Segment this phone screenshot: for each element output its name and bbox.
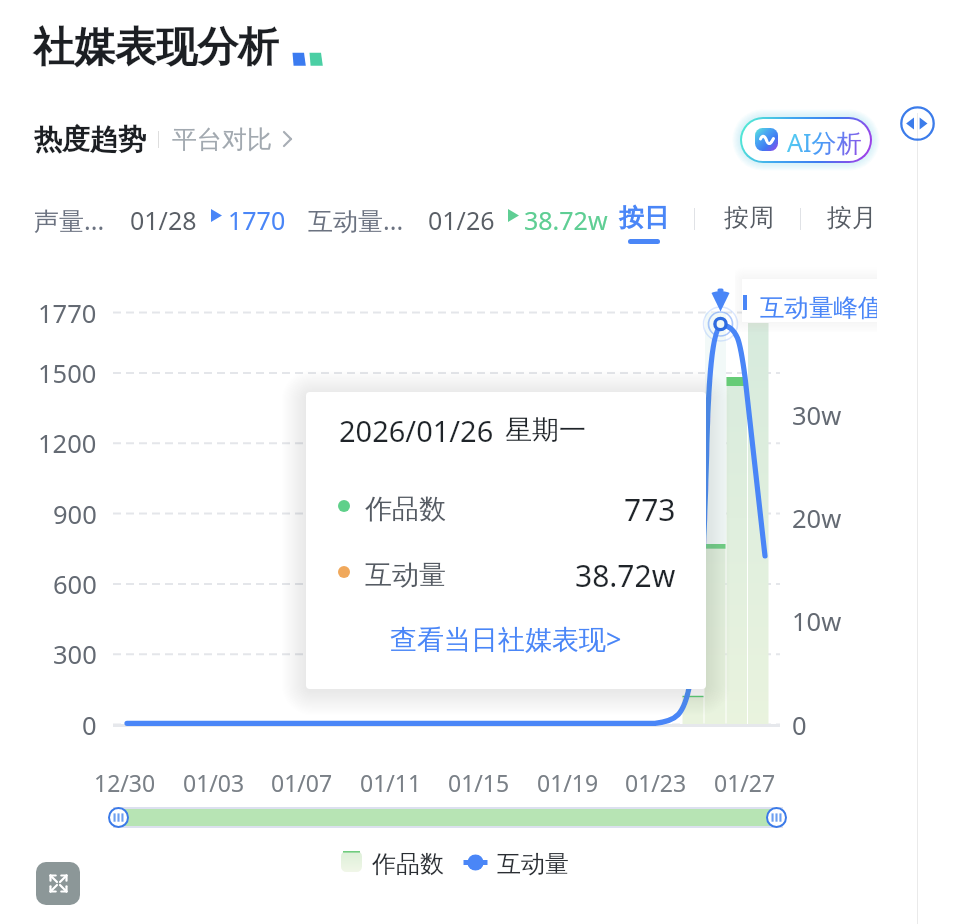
staticText: 互动量 — [497, 849, 569, 879]
button[interactable]: Range handle — [108, 807, 129, 828]
staticText: 平台对比 — [172, 124, 272, 155]
button[interactable]: AI分析 — [742, 119, 870, 161]
staticText: 作品数 — [372, 849, 444, 879]
staticText: 1500 — [38, 356, 97, 390]
staticText: 300 — [53, 637, 97, 671]
staticText: 声量... — [34, 203, 105, 237]
staticText: 热度趋势 — [34, 122, 146, 157]
button[interactable]: Collapse panel — [900, 106, 935, 141]
staticText: 查看当日社媒表现> — [390, 620, 622, 657]
staticText: 900 — [53, 497, 97, 531]
staticText: 0 — [792, 708, 807, 742]
staticText: 01/11 — [360, 767, 422, 798]
staticText: 38.72w — [575, 555, 676, 596]
staticText: 互动量 — [365, 558, 446, 592]
staticText: 1200 — [38, 426, 97, 460]
staticText: 01/15 — [448, 767, 510, 798]
staticText: 01/26 — [428, 203, 495, 237]
button[interactable]: Range handle — [766, 807, 787, 828]
staticText: 20w — [792, 501, 842, 535]
staticText: 30w — [792, 398, 842, 432]
staticText: 1770 — [38, 296, 97, 330]
staticText: 作品数 — [365, 492, 446, 526]
staticText: 星期一 — [505, 413, 586, 447]
staticText: 01/27 — [714, 767, 776, 798]
staticText: 773 — [624, 489, 676, 530]
staticText: 按月 — [827, 202, 877, 233]
staticText: 0 — [82, 708, 97, 742]
staticText: AI分析 — [787, 125, 862, 159]
button[interactable]: 查看当日社媒表现> — [376, 614, 636, 662]
button[interactable]: Fullscreen — [36, 862, 80, 905]
staticText: 互动量... — [308, 203, 404, 237]
staticText: 1770 — [228, 203, 286, 237]
staticText: 2026/01/26 — [339, 411, 494, 450]
button[interactable]: 按周 — [717, 198, 781, 240]
button[interactable]: 按日 — [612, 198, 676, 250]
staticText: 互动量峰值 — [760, 292, 877, 323]
staticText: 600 — [53, 567, 97, 601]
staticText: 按日 — [619, 202, 669, 233]
staticText: 社媒表现分析 — [33, 22, 279, 74]
staticText: 38.72w — [524, 203, 608, 237]
staticText: 01/03 — [183, 767, 245, 798]
staticText: 12/30 — [94, 767, 156, 798]
button[interactable] — [113, 807, 783, 828]
button[interactable]: 作品数 — [336, 845, 572, 879]
staticText: 01/28 — [130, 203, 197, 237]
button[interactable]: 按月 — [820, 198, 884, 240]
staticText: 01/19 — [537, 767, 599, 798]
staticText: 按周 — [724, 202, 774, 233]
staticText: 10w — [792, 604, 842, 638]
staticText: 01/07 — [271, 767, 333, 798]
staticText: 01/23 — [625, 767, 687, 798]
button[interactable]: 平台对比 — [172, 118, 296, 160]
